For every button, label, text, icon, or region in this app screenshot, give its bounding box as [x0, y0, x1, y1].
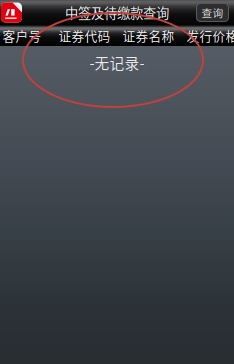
button[interactable]: 查询	[196, 3, 228, 21]
staticText: 中签及待缴款查询	[65, 3, 169, 22]
staticText: 发行价格	[186, 26, 234, 45]
staticText: 证券名称	[122, 26, 174, 45]
staticText: 查询	[201, 5, 223, 20]
staticText: 证券代码	[58, 26, 110, 45]
staticText: 客户号	[2, 26, 41, 45]
staticText: -无记录-	[89, 52, 144, 73]
button[interactable]: App home	[1, 2, 22, 22]
